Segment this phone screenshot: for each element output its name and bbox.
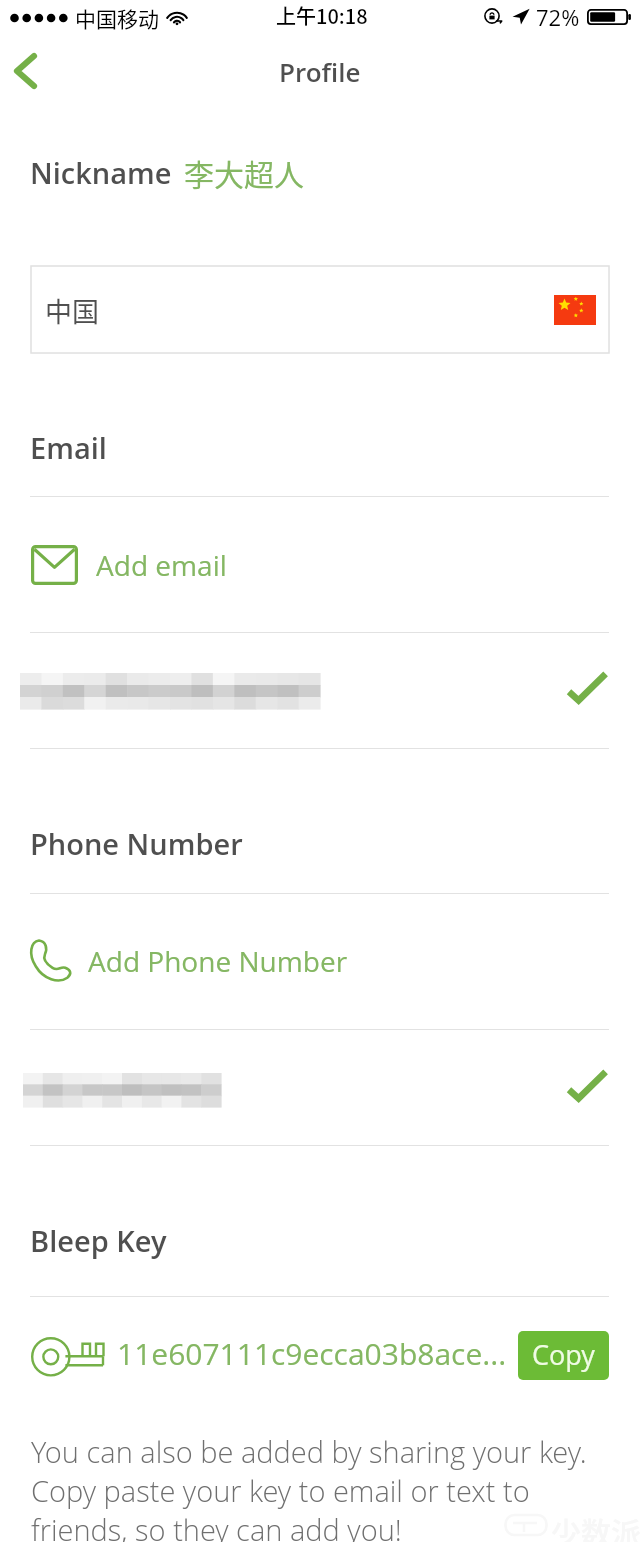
staticText: 72% (536, 2, 580, 32)
button[interactable] (0, 1297, 640, 1412)
staticText: 中国 (45, 291, 99, 330)
button[interactable] (0, 497, 640, 632)
staticText: Copy (532, 1336, 595, 1373)
staticText: Add Phone Number (88, 942, 348, 980)
staticText: Phone Number (30, 824, 243, 863)
staticText: 中国移动 (75, 3, 159, 33)
staticText: You can also be added by sharing your ke… (31, 1432, 603, 1542)
button[interactable] (0, 1030, 640, 1145)
staticText: 11e607111c9ecca03b8ace... (117, 1333, 507, 1374)
button[interactable] (0, 894, 640, 1029)
staticText: Profile (279, 54, 361, 89)
staticText: 上午10:18 (276, 1, 368, 30)
staticText: 李大超人 (184, 151, 304, 194)
staticText: Bleep Key (30, 1221, 167, 1260)
button[interactable]: Copy (518, 1331, 609, 1380)
button[interactable]: 中国 (31, 266, 609, 353)
staticText: Nickname (30, 153, 172, 192)
button[interactable] (0, 633, 640, 748)
staticText: 少数派 (551, 1509, 640, 1542)
staticText: Add email (96, 546, 227, 584)
staticText: Email (30, 428, 107, 467)
button[interactable]: Back (0, 46, 72, 102)
